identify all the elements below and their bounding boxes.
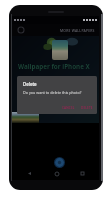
staticText: Do you want to delete this photo? [23, 90, 82, 95]
staticText: Wallpaper for iPhone X [18, 62, 90, 71]
button[interactable]: CANCEL [60, 106, 77, 110]
staticText: Delete [23, 81, 37, 87]
button[interactable]: Home [52, 169, 61, 178]
button[interactable]: Recents [78, 169, 87, 178]
button[interactable]: DELETE [79, 106, 95, 110]
staticText: CANCEL [62, 106, 75, 110]
button[interactable]: Back [25, 169, 34, 178]
button[interactable]: MORE WALLPAPERS [60, 28, 95, 33]
staticText: DELETE [81, 106, 93, 110]
button[interactable]: Back [17, 26, 25, 34]
